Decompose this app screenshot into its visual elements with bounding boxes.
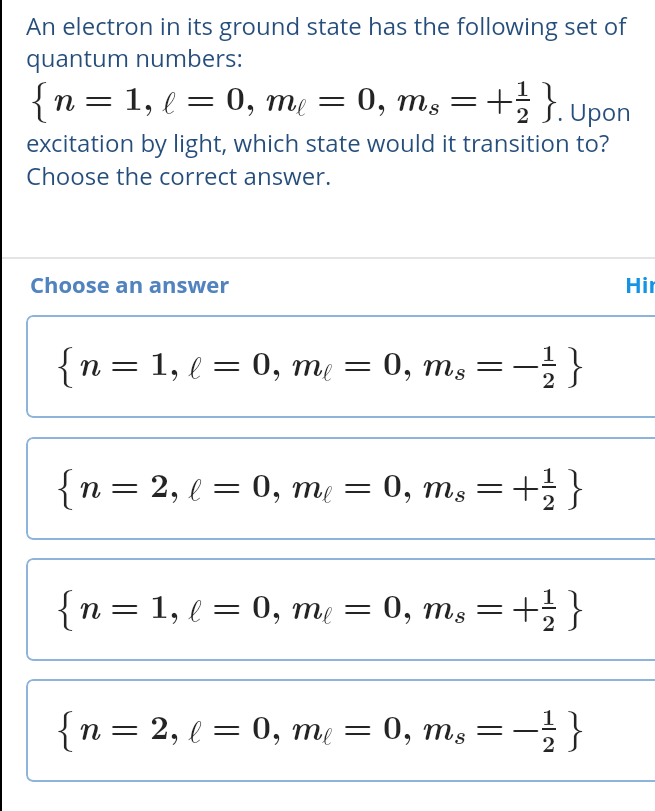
staticText: 0 [252, 460, 271, 507]
staticText: quantum numbers: [26, 41, 243, 74]
staticText: 1 [150, 581, 169, 628]
staticText: s [453, 352, 465, 388]
staticText: m [290, 580, 322, 628]
staticText: = [449, 73, 479, 120]
staticText: , [143, 73, 154, 120]
staticText: ℓ [322, 725, 333, 749]
button[interactable] [26, 679, 655, 782]
button[interactable] [26, 437, 655, 540]
staticText: n [78, 701, 100, 749]
staticText: = [343, 581, 373, 628]
staticText: 0 [383, 702, 402, 749]
staticText: 1 [150, 338, 169, 385]
staticText: + [485, 73, 515, 120]
staticText: { [29, 80, 50, 121]
staticText: ℓ [162, 87, 176, 120]
button[interactable]: Hint [625, 269, 655, 299]
staticText: m [421, 580, 453, 628]
staticText: ℓ [188, 474, 202, 507]
staticText: s [427, 87, 439, 123]
staticText: = [343, 338, 373, 385]
staticText: m [421, 337, 453, 385]
button[interactable] [26, 315, 655, 418]
staticText: n [78, 337, 100, 385]
staticText: 2 [542, 726, 556, 759]
staticText: , [402, 338, 413, 385]
staticText: − [511, 702, 541, 749]
staticText: = [343, 460, 373, 507]
staticText: } [539, 80, 560, 121]
staticText: ℓ [188, 352, 202, 385]
staticText: m [421, 459, 453, 507]
staticText: ℓ [322, 604, 333, 628]
staticText: + [511, 581, 541, 628]
staticText: = [84, 73, 114, 120]
staticText: − [511, 338, 541, 385]
staticText: , [169, 702, 180, 749]
staticText: 0 [252, 338, 271, 385]
staticText: s [453, 474, 465, 510]
staticText: , [169, 460, 180, 507]
staticText: = [110, 702, 140, 749]
staticText: n [52, 72, 74, 120]
staticText: = [212, 460, 242, 507]
staticText: n [78, 459, 100, 507]
staticText: 0 [357, 73, 376, 120]
staticText: , [271, 702, 282, 749]
button[interactable] [26, 558, 655, 661]
staticText: = [212, 702, 242, 749]
staticText: 1 [542, 699, 556, 732]
staticText: 0 [226, 73, 245, 120]
staticText: = [475, 581, 505, 628]
staticText: m [290, 337, 322, 385]
staticText: { [55, 588, 76, 629]
staticText: = [212, 338, 242, 385]
staticText: 1 [124, 73, 143, 120]
staticText: , [245, 73, 256, 120]
staticText: 2 [542, 605, 556, 638]
staticText: , [402, 702, 413, 749]
staticText: , [169, 338, 180, 385]
staticText: excitation by light, which state would i… [26, 126, 610, 159]
staticText: ℓ [296, 96, 307, 120]
staticText: m [264, 72, 296, 120]
button[interactable]: Choose an answer [30, 269, 230, 299]
staticText: { [55, 345, 76, 386]
staticText: s [453, 716, 465, 752]
staticText: 1 [542, 335, 556, 368]
staticText: s [453, 595, 465, 631]
staticText: , [169, 581, 180, 628]
staticText: 1 [516, 70, 530, 103]
staticText: n [78, 580, 100, 628]
staticText: 0 [252, 702, 271, 749]
staticText: { [55, 709, 76, 750]
staticText: } [565, 709, 586, 750]
staticText: = [110, 581, 140, 628]
staticText: An electron in its ground state has the … [26, 9, 627, 42]
staticText: 1 [542, 457, 556, 490]
staticText: 0 [383, 581, 402, 628]
staticText: 0 [383, 460, 402, 507]
staticText: = [317, 73, 347, 120]
staticText: , [271, 338, 282, 385]
staticText: = [475, 338, 505, 385]
staticText: , [376, 73, 387, 120]
staticText: = [186, 73, 216, 120]
staticText: ℓ [188, 716, 202, 749]
staticText: m [290, 459, 322, 507]
staticText: } [565, 588, 586, 629]
staticText: = [475, 460, 505, 507]
staticText: } [565, 467, 586, 508]
staticText: , [402, 581, 413, 628]
staticText: ℓ [322, 361, 333, 385]
staticText: , [271, 460, 282, 507]
staticText: 2 [542, 484, 556, 517]
staticText: 2 [542, 362, 556, 395]
staticText: 2 [150, 702, 169, 749]
staticText: m [395, 72, 427, 120]
staticText: 0 [383, 338, 402, 385]
staticText: 2 [150, 460, 169, 507]
staticText: ℓ [188, 595, 202, 628]
staticText: m [421, 701, 453, 749]
staticText: , [402, 460, 413, 507]
